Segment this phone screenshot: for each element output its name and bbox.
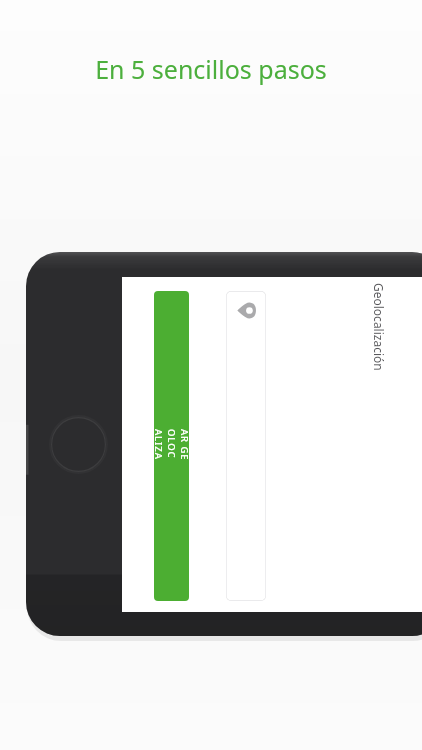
staticText: ACTIVAR GEOLOCALIZACIÓN — [154, 429, 189, 464]
button[interactable]: ACTIVAR GEOLOCALIZACIÓN — [154, 291, 189, 601]
other: Location — [236, 300, 257, 321]
staticText: Geolocalización — [371, 283, 387, 371]
staticText: En 5 sencillos pasos — [95, 52, 327, 86]
button[interactable]: Location — [226, 291, 266, 601]
